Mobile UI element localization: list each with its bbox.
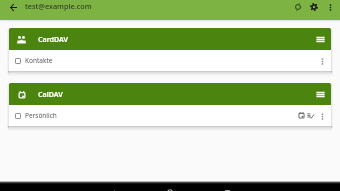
button[interactable]: More options	[316, 55, 328, 67]
button[interactable]: Reorder collections	[314, 88, 327, 101]
button[interactable]: CardDAV	[9, 28, 331, 50]
button[interactable]: Persönlich	[9, 105, 331, 126]
staticText: CalDAV	[38, 89, 63, 99]
button[interactable]: Back	[106, 187, 120, 191]
staticText: CardDAV	[38, 34, 69, 44]
button[interactable]: Kontakte	[9, 50, 331, 71]
staticText: Persönlich	[25, 111, 57, 120]
button[interactable]: More options	[316, 110, 328, 122]
button[interactable]: Synchronize now	[288, 0, 308, 17]
button[interactable]: Home	[163, 187, 177, 191]
staticText: Kontakte	[25, 56, 53, 65]
button[interactable]: Reorder collections	[314, 33, 327, 46]
button[interactable]: CalDAV	[9, 83, 331, 105]
button[interactable]: Navigate up	[3, 0, 23, 17]
button[interactable]: Recent apps	[220, 187, 234, 191]
staticText: test@example.com	[25, 1, 92, 11]
button[interactable]: More options	[320, 0, 340, 17]
button[interactable]: Settings	[304, 0, 324, 17]
